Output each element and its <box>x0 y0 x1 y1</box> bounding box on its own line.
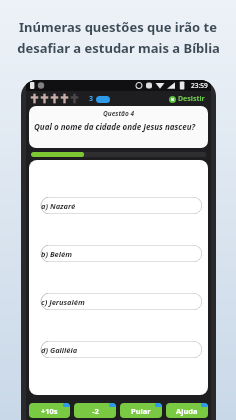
button[interactable]: c) Jerusalém <box>35 293 202 310</box>
button[interactable]: Pular <box>120 403 162 418</box>
staticText: 23:59 <box>191 81 208 90</box>
staticText: d) Galiléia <box>41 345 78 355</box>
button[interactable]: Desistir <box>167 93 207 105</box>
staticText: -2 <box>92 406 99 416</box>
staticText: a) Nazaré <box>41 201 76 211</box>
staticText: Inúmeras questões que irão te <box>19 18 217 36</box>
button[interactable]: a) Nazaré <box>35 197 202 214</box>
staticText: 3 <box>89 94 94 104</box>
staticText: Pular <box>131 406 151 416</box>
staticText: Ajuda <box>176 406 198 416</box>
staticText: Desistir <box>178 94 205 104</box>
staticText: b) Belém <box>41 249 73 259</box>
staticText: Questão 4 <box>34 109 203 118</box>
staticText: +10s <box>41 406 58 416</box>
button[interactable]: Ajuda <box>166 403 208 418</box>
button[interactable]: b) Belém <box>35 245 202 262</box>
staticText: c) Jerusalém <box>41 297 85 307</box>
button[interactable]: d) Galiléia <box>35 341 202 358</box>
staticText: Qual o nome da cidade onde Jesus nasceu? <box>34 121 196 132</box>
button[interactable]: +10s <box>29 403 70 418</box>
button[interactable]: -2 <box>74 403 116 418</box>
staticText: desafiar a estudar mais a Bíblia <box>17 39 220 57</box>
